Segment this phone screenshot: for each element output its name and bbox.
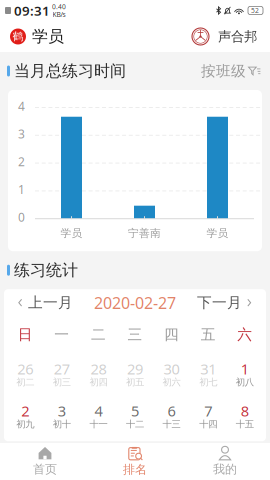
staticText: 初八: [236, 376, 254, 388]
button[interactable]: 5: [117, 395, 153, 437]
staticText: 下一月: [197, 294, 242, 312]
staticText: 十四: [199, 418, 217, 430]
staticText: 首页: [33, 462, 57, 477]
staticText: 3: [18, 126, 25, 142]
staticText: 初七: [199, 376, 217, 388]
staticText: 4: [18, 98, 25, 114]
staticText: 四: [164, 326, 179, 344]
staticText: 练习统计: [14, 260, 78, 280]
button[interactable]: 排名: [90, 443, 180, 480]
staticText: 上一月: [28, 294, 73, 312]
staticText: 十三: [163, 418, 181, 430]
staticText: 学员: [32, 27, 64, 46]
staticText: 一: [54, 326, 69, 344]
staticText: 31: [200, 359, 216, 378]
staticText: 8: [241, 401, 249, 420]
button[interactable]: 首页: [0, 443, 90, 480]
staticText: 三: [127, 326, 142, 344]
staticText: 当月总练习时间: [14, 61, 126, 81]
staticText: 十五: [236, 418, 254, 430]
staticText: 2020-02-27: [94, 292, 176, 313]
staticText: 排名: [123, 462, 147, 477]
button[interactable]: 3: [44, 395, 80, 437]
staticText: 日: [18, 326, 33, 344]
staticText: 5: [131, 401, 139, 420]
staticText: 28: [90, 359, 106, 378]
staticText: 27: [54, 359, 70, 378]
staticText: 初九: [16, 418, 34, 430]
staticText: 六: [237, 326, 252, 344]
staticText: KB/s: [52, 10, 65, 19]
staticText: 1: [241, 359, 249, 378]
staticText: 52: [251, 6, 259, 15]
button[interactable]: 31: [190, 353, 226, 395]
staticText: 初四: [89, 376, 107, 388]
staticText: 29: [127, 359, 143, 378]
staticText: 初十: [53, 418, 71, 430]
staticText: 十二: [126, 418, 144, 430]
staticText: 学员: [60, 227, 82, 240]
button[interactable]: 8: [226, 395, 263, 437]
staticText: 我的: [213, 462, 237, 476]
staticText: 学员: [206, 227, 228, 240]
staticText: 6: [168, 401, 176, 420]
button[interactable]: 27: [44, 353, 80, 395]
button[interactable]: 声合邦: [192, 28, 257, 45]
staticText: 初五: [126, 376, 144, 388]
staticText: 0.40: [52, 2, 66, 11]
staticText: 二: [91, 326, 106, 344]
button[interactable]: 30: [153, 353, 190, 395]
staticText: 按班级: [201, 62, 246, 80]
button[interactable]: 26: [7, 353, 44, 395]
staticText: 声合邦: [218, 28, 257, 45]
staticText: 五: [201, 326, 216, 344]
staticText: 30: [164, 359, 180, 378]
button[interactable]: 上一月: [18, 291, 73, 315]
button[interactable]: 4: [80, 395, 117, 437]
button[interactable]: 鹤: [10, 27, 64, 46]
staticText: 4: [94, 401, 102, 420]
button[interactable]: 6: [153, 395, 190, 437]
staticText: 初二: [16, 376, 34, 388]
button[interactable]: 我的: [180, 443, 270, 480]
staticText: 0: [18, 209, 25, 225]
button[interactable]: 28: [80, 353, 117, 395]
button[interactable]: 下一月: [197, 291, 252, 315]
button[interactable]: 7: [190, 395, 226, 437]
staticText: 2: [21, 401, 29, 420]
staticText: 初三: [53, 376, 71, 388]
staticText: 09:31: [14, 2, 50, 19]
button[interactable]: 29: [117, 353, 153, 395]
staticText: 1: [18, 181, 25, 197]
staticText: 3: [58, 401, 66, 420]
staticText: 2: [18, 154, 25, 169]
staticText: 初六: [163, 376, 181, 388]
staticText: 26: [17, 359, 33, 378]
staticText: 鹤: [12, 30, 23, 43]
button[interactable]: 2: [7, 395, 44, 437]
button[interactable]: 按班级: [201, 62, 261, 80]
staticText: 十一: [89, 418, 107, 430]
staticText: 7: [204, 401, 212, 420]
button[interactable]: 1: [226, 353, 263, 395]
staticText: 宁善南: [128, 227, 161, 240]
